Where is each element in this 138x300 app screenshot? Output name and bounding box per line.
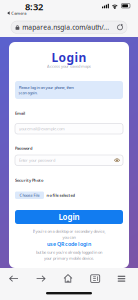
staticText: Password bbox=[15, 145, 33, 151]
button[interactable]: Tabs bbox=[90, 274, 100, 283]
staticText: use QR code login bbox=[47, 240, 91, 248]
button[interactable]: Choose File bbox=[15, 191, 44, 199]
staticText: Email bbox=[15, 110, 25, 116]
button[interactable]: Forward bbox=[36, 275, 46, 282]
button[interactable]: Login bbox=[15, 210, 123, 224]
staticText: Access your saved maps bbox=[47, 63, 91, 69]
staticText: but be sure you're already logged in on bbox=[36, 249, 102, 255]
staticText: Camera bbox=[11, 10, 26, 16]
staticText: Please log in on your phone, then scan a… bbox=[18, 85, 73, 95]
staticText: your.email@example.com bbox=[19, 126, 65, 131]
button[interactable]: Menu bbox=[117, 275, 125, 282]
button[interactable]: maparea.nsgia.com/auth/... bbox=[11, 21, 127, 33]
button[interactable]: Back bbox=[9, 275, 19, 282]
staticText: Security Photo bbox=[15, 177, 43, 183]
staticText: Login bbox=[51, 49, 86, 65]
staticText: no file selected bbox=[46, 193, 75, 198]
staticText: your primary mobile device. bbox=[44, 255, 94, 261]
button[interactable]: use QR code login bbox=[9, 240, 129, 248]
staticText: Enter your password bbox=[19, 158, 55, 163]
staticText: Login bbox=[58, 212, 79, 222]
staticText: If you're on a desktop or secondary devi… bbox=[32, 228, 105, 234]
staticText: Choose File bbox=[19, 193, 39, 198]
staticText: 8:32 bbox=[25, 0, 43, 13]
button[interactable]: Home bbox=[63, 274, 72, 283]
staticText: maparea.nsgia.com/auth/... bbox=[22, 23, 109, 32]
staticText: you can bbox=[62, 234, 75, 240]
button[interactable]: Back to Camera bbox=[7, 10, 26, 16]
